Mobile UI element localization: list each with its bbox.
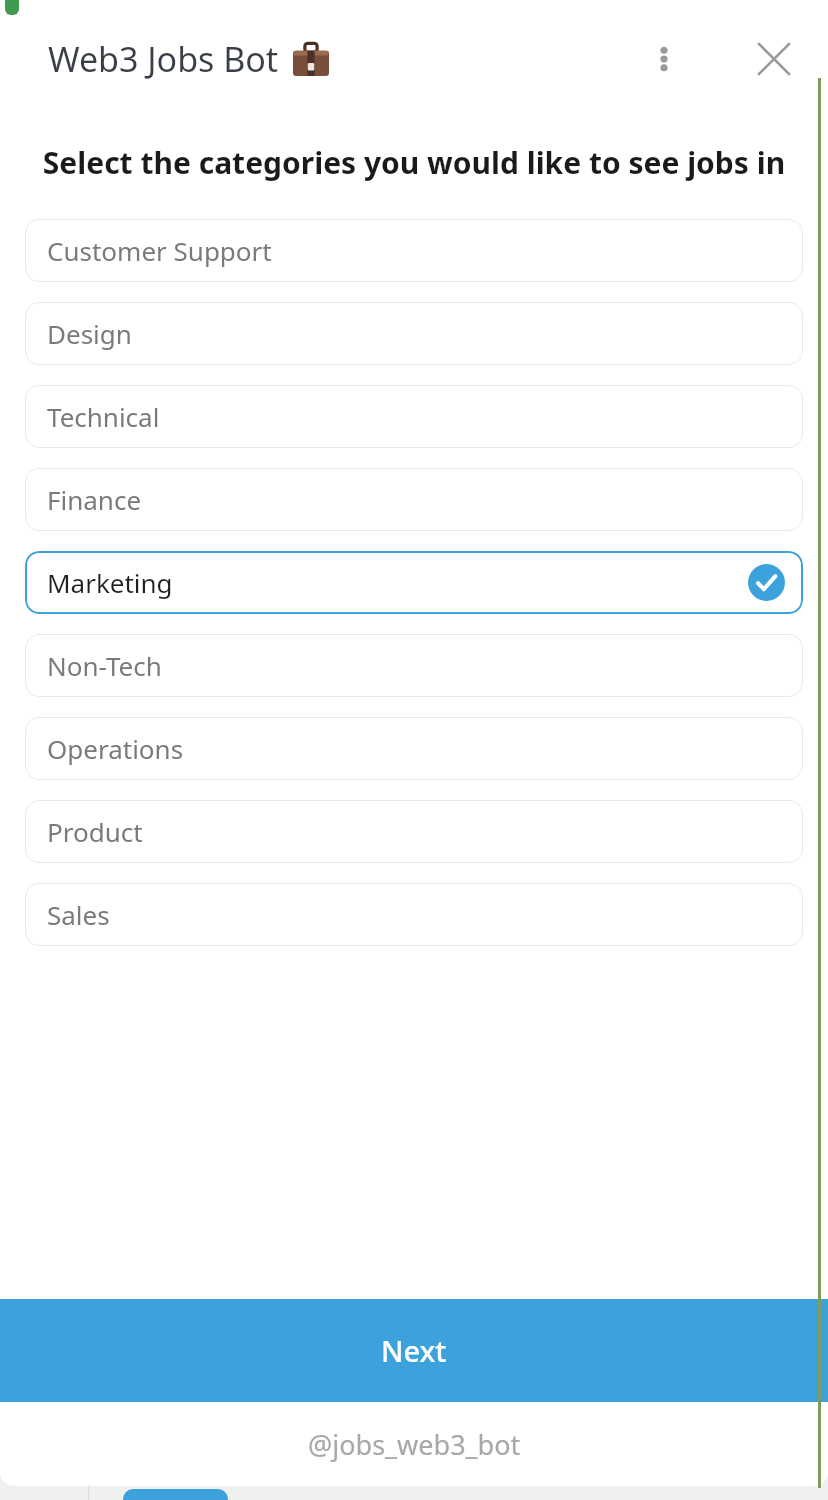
staticText: @jobs_web3_bot [308,1426,521,1463]
button[interactable]: Close [746,31,802,87]
button[interactable]: Design [25,302,803,365]
staticText: Product [47,814,143,849]
button[interactable]: Operations [25,717,803,780]
button[interactable]: Technical [25,385,803,448]
staticText: Select the categories you would like to … [0,142,828,183]
button[interactable]: Next [0,1299,828,1402]
button[interactable]: Non-Tech [25,634,803,697]
staticText: Web3 Jobs Bot [48,36,279,82]
button[interactable]: Customer Support [25,219,803,282]
button[interactable]: Finance [25,468,803,531]
staticText: Sales [47,897,110,932]
staticText: Finance [47,482,142,517]
staticText: Operations [47,731,184,766]
staticText: Non-Tech [47,648,162,683]
button[interactable]: Marketing [25,551,803,614]
staticText: Design [47,316,132,351]
staticText: Customer Support [47,233,272,268]
staticText: Technical [47,399,160,434]
button[interactable]: More options [636,31,692,87]
staticText: Next [381,1331,447,1370]
button[interactable]: Sales [25,883,803,946]
staticText: Marketing [47,565,173,600]
button[interactable]: Product [25,800,803,863]
